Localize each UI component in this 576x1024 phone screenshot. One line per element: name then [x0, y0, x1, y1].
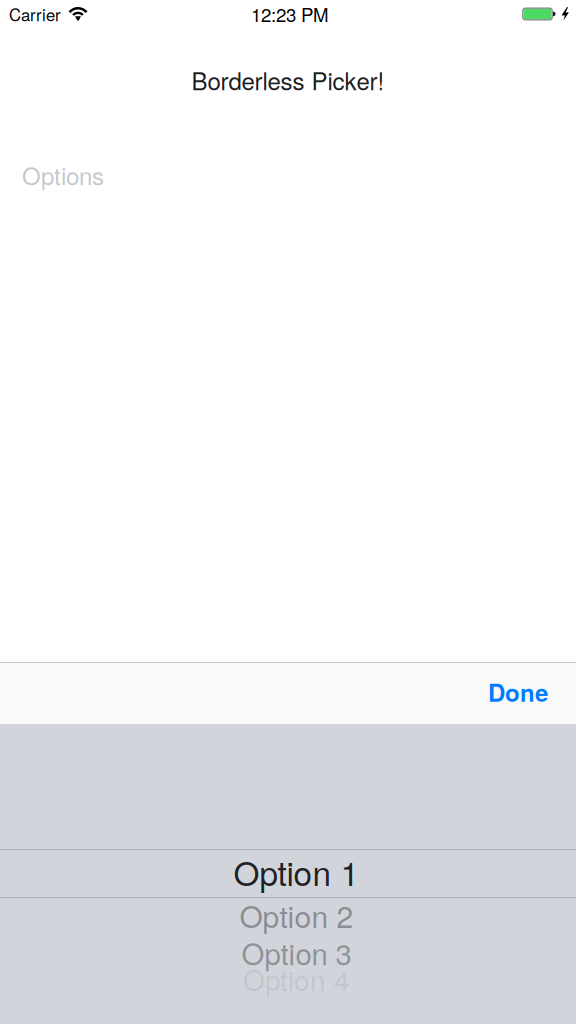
staticText: Options [22, 158, 104, 192]
staticText: 12:23 PM [251, 1, 329, 27]
staticText: Option 1 [233, 848, 359, 895]
staticText: Option 2 [239, 893, 353, 936]
staticText: Carrier [9, 2, 61, 26]
staticText: Option 3 [241, 931, 351, 973]
button[interactable]: Done [464, 662, 576, 724]
button[interactable]: Option 1 [17, 857, 576, 886]
staticText: Done [488, 675, 548, 709]
staticText: Borderless Picker! [191, 63, 384, 97]
button[interactable]: Options [0, 160, 576, 190]
staticText: Option 4 [243, 959, 350, 999]
